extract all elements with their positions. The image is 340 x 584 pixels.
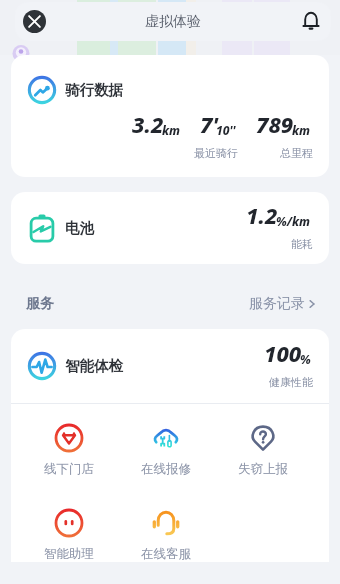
staticText: 线下门店 [44,461,94,477]
button[interactable]: 服务记录 [249,295,318,313]
staticText: 3.2 [132,109,164,139]
staticText: 1.2 [246,200,278,230]
staticText: 7' [200,109,218,139]
staticText: 服务记录 [249,295,305,313]
staticText: 总里程 [280,146,313,160]
staticText: 智能体检 [65,357,123,375]
button[interactable]: 智能助理 [20,508,117,562]
staticText: 虚拟体验 [145,13,201,31]
button[interactable]: 智能体检 [27,329,313,403]
staticText: 能耗 [291,237,313,251]
staticText: 789 [256,109,294,139]
staticText: 智能助理 [44,546,94,562]
staticText: km [162,122,181,138]
staticText: 在线客服 [141,546,191,562]
staticText: 骑行数据 [65,81,123,99]
staticText: %/km [276,213,311,229]
button[interactable]: 在线报修 [117,423,214,477]
staticText: 10'' [216,122,236,138]
staticText: 100 [264,338,302,368]
button[interactable]: 骑行数据 [11,55,329,177]
button[interactable]: 线下门店 [20,423,117,477]
staticText: 服务 [26,295,54,313]
button[interactable]: 在线客服 [117,508,214,562]
staticText: 最近骑行 [194,146,238,160]
staticText: 失窃上报 [238,461,288,477]
button[interactable]: 电池 [11,192,329,264]
staticText: km [292,122,311,138]
button[interactable]: Notifications [300,9,322,31]
staticText: 健康性能 [269,375,313,389]
button[interactable]: Close [23,10,46,33]
staticText: 电池 [65,219,94,237]
staticText: % [300,351,311,367]
staticText: 在线报修 [141,461,191,477]
button[interactable]: 失窃上报 [214,423,311,477]
